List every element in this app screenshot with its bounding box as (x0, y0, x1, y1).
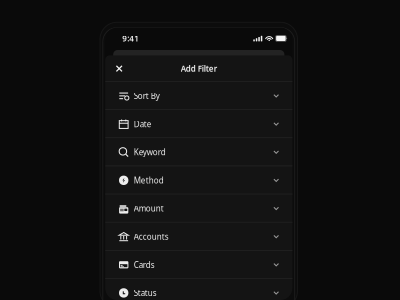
staticText: Cards (134, 259, 155, 270)
staticText: Accounts (134, 231, 169, 242)
staticText: Add Filter (181, 63, 217, 74)
staticText: Date (134, 119, 152, 129)
staticText: Method (134, 175, 164, 186)
button[interactable]: Date (105, 110, 292, 138)
staticText: Status (134, 288, 157, 298)
button[interactable]: Status (105, 279, 292, 300)
button[interactable]: Sort By (105, 82, 292, 110)
staticText: 9:41 (122, 33, 139, 44)
button[interactable]: Accounts (105, 223, 292, 251)
staticText: Amount (134, 203, 164, 214)
staticText: Sort By (134, 91, 160, 101)
staticText: Keyword (134, 147, 166, 157)
button[interactable]: Amount (105, 194, 292, 222)
button[interactable]: Keyword (105, 138, 292, 166)
button[interactable]: Method (105, 166, 292, 194)
button[interactable]: Close (112, 62, 126, 76)
button[interactable]: Cards (105, 251, 292, 279)
